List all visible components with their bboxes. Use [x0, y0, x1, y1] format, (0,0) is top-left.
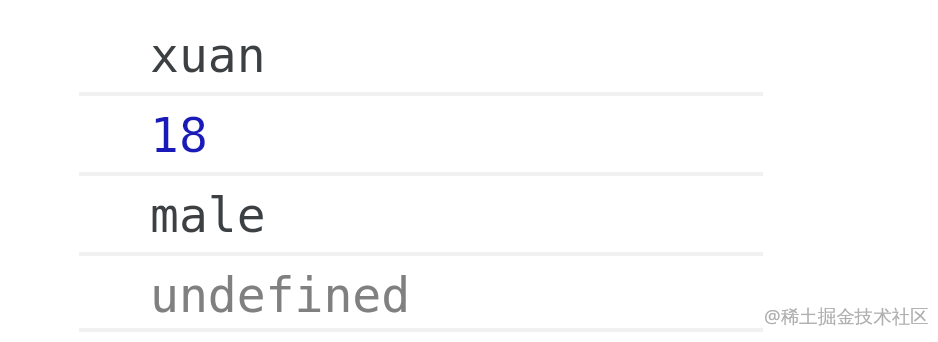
button[interactable]: undefined	[0, 254, 938, 330]
staticText: undefined	[150, 267, 411, 323]
staticText: xuan	[150, 27, 266, 83]
staticText: male	[150, 187, 266, 243]
button[interactable]: xuan	[0, 14, 938, 94]
button[interactable]: male	[0, 174, 938, 254]
staticText: 18	[150, 107, 208, 163]
button[interactable]: 18	[0, 94, 938, 174]
staticText: @稀土掘金技术社区	[764, 303, 929, 328]
